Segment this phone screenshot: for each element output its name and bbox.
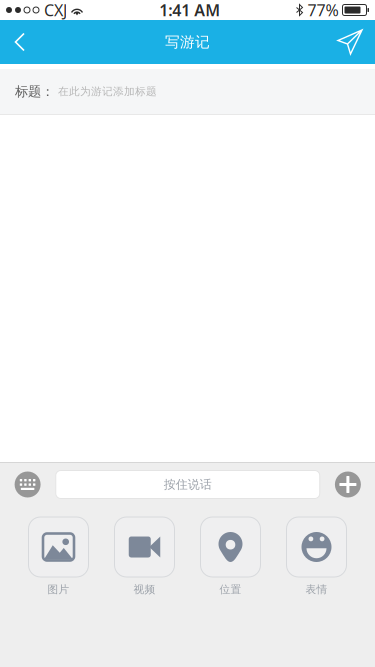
staticText: 写游记 (165, 33, 210, 51)
staticText: 表情 (305, 583, 327, 596)
staticText: 1:41 AM (159, 0, 220, 21)
button[interactable]: 视频 (114, 517, 174, 596)
button[interactable]: Keyboard (15, 471, 41, 497)
button[interactable]: 按住说话 (56, 470, 320, 498)
staticText: 按住说话 (164, 477, 212, 492)
button[interactable]: Send (325, 20, 375, 64)
button[interactable]: 图片 (28, 517, 88, 596)
staticText: 视频 (133, 583, 155, 596)
button[interactable]: 表情 (286, 517, 346, 596)
staticText: CXJ (44, 0, 67, 21)
staticText: 标题： (15, 83, 54, 100)
staticText: 在此为游记添加标题 (58, 85, 157, 98)
button[interactable]: 位置 (200, 517, 260, 596)
button[interactable]: Back (0, 20, 40, 63)
button[interactable]: More (335, 471, 361, 497)
staticText: 图片 (47, 583, 69, 596)
staticText: 77% (307, 0, 338, 21)
staticText: 位置 (219, 583, 241, 596)
